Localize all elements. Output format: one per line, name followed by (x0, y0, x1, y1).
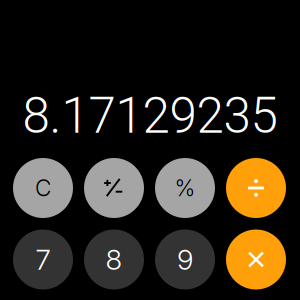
staticText: 9 (177, 243, 193, 276)
button[interactable]: Divide (226, 158, 286, 218)
button[interactable]: 7 (13, 229, 73, 289)
button[interactable]: C (13, 158, 73, 218)
button[interactable]: Toggle sign (84, 158, 144, 218)
staticText: 7 (35, 243, 50, 276)
staticText: % (174, 174, 195, 202)
staticText: 8.17129235 (22, 87, 277, 145)
button[interactable]: 9 (155, 229, 215, 289)
staticText: 8 (105, 243, 122, 276)
staticText: C (35, 174, 51, 202)
button[interactable]: Multiply (226, 229, 286, 289)
button[interactable]: % (155, 158, 215, 218)
button[interactable]: 8 (84, 229, 144, 289)
